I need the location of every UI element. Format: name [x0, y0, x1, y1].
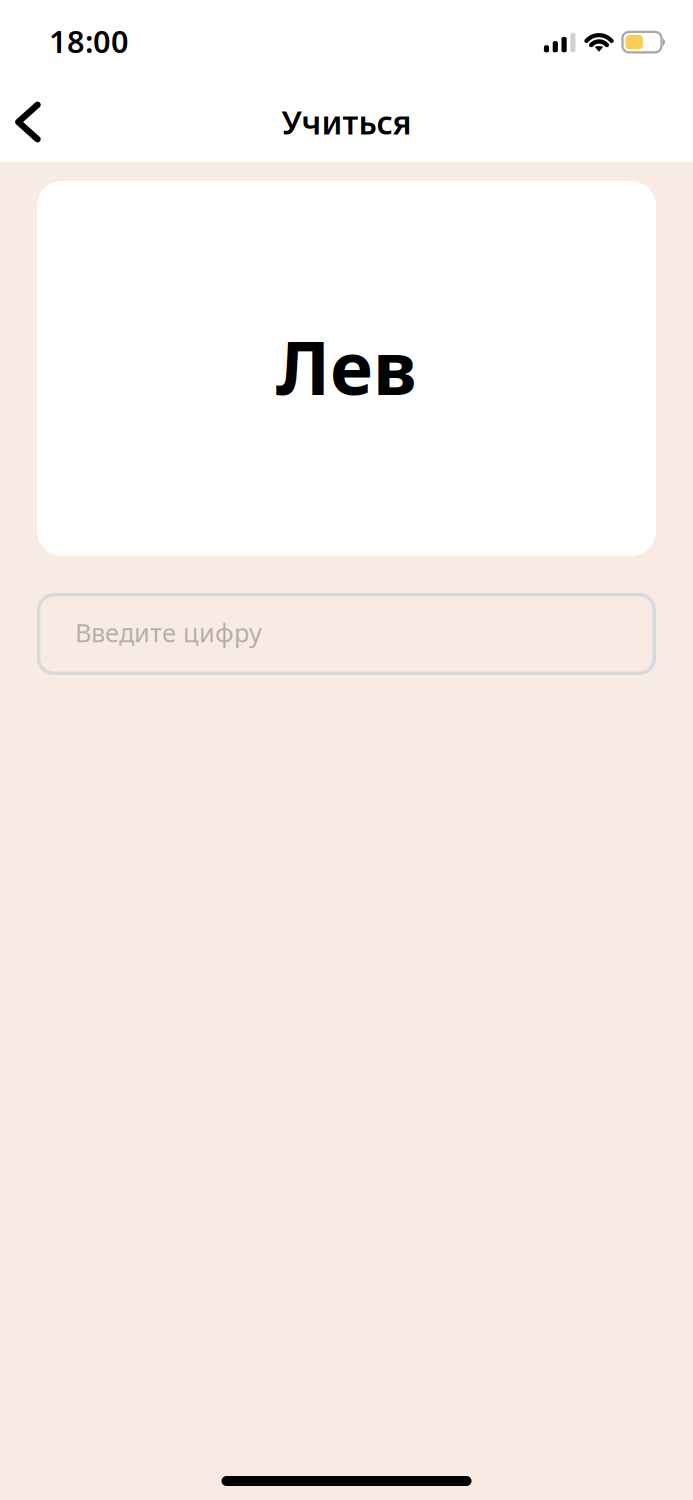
staticText: Учиться: [281, 101, 411, 143]
staticText: 18:00: [49, 21, 129, 61]
button[interactable]: Back: [0, 91, 56, 153]
staticText: Лев: [276, 318, 417, 415]
button[interactable]: Лев: [37, 181, 656, 556]
staticText: Введите цифру: [75, 616, 262, 649]
button[interactable]: Введите цифру: [37, 593, 656, 675]
